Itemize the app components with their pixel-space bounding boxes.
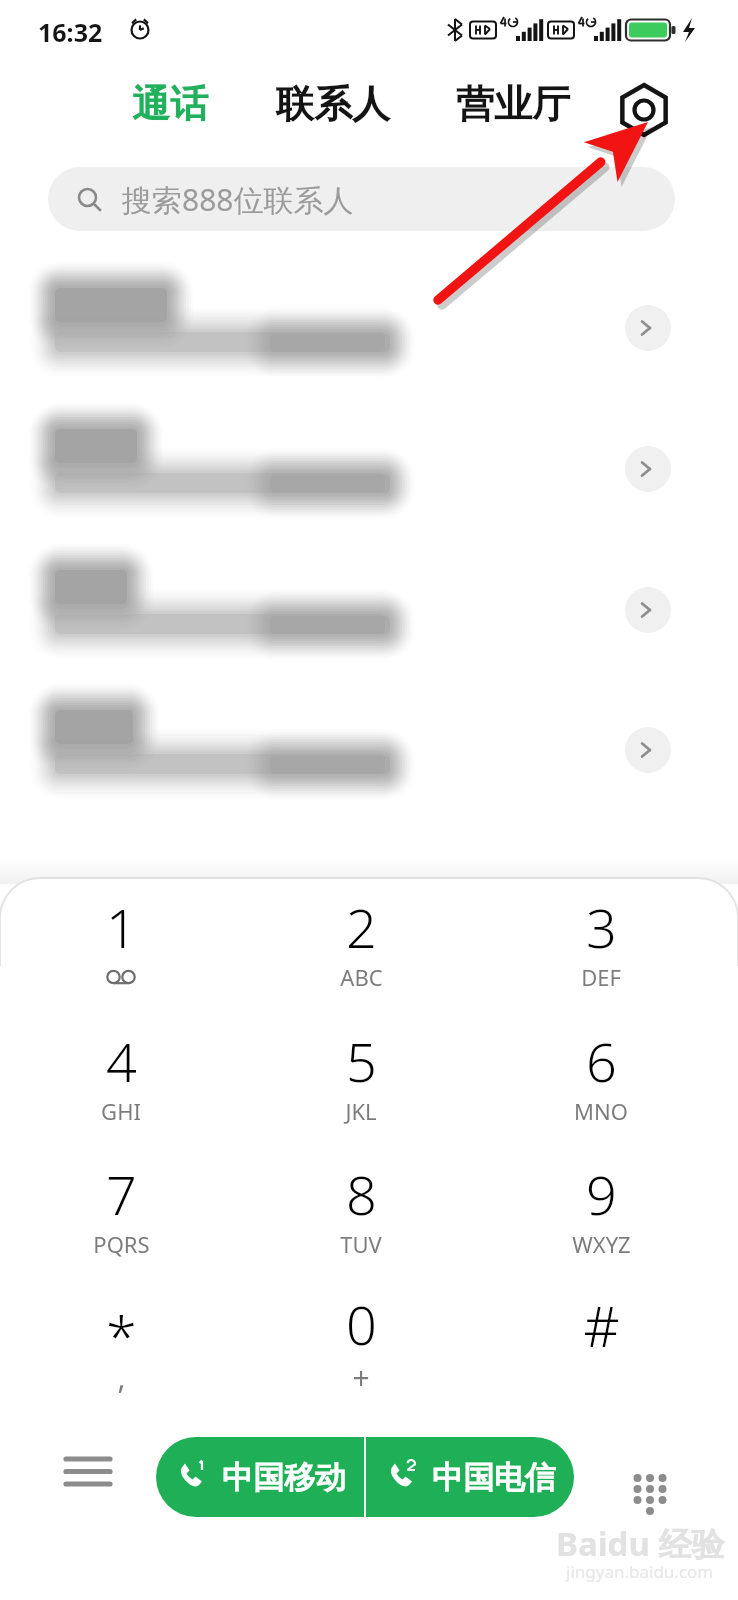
staticText: , bbox=[117, 1357, 126, 1398]
staticText: 3 bbox=[586, 890, 617, 964]
staticText: 7 bbox=[106, 1157, 137, 1231]
button[interactable]: 5 bbox=[261, 1018, 461, 1146]
button[interactable] bbox=[0, 399, 738, 539]
staticText: 联系人 bbox=[276, 80, 390, 128]
staticText: + bbox=[352, 1357, 370, 1398]
button[interactable]: 9 bbox=[501, 1151, 701, 1279]
button[interactable]: 通话 bbox=[128, 78, 212, 130]
button[interactable]: Settings bbox=[616, 82, 672, 138]
button[interactable]: 营业厅 bbox=[452, 78, 574, 130]
button[interactable] bbox=[0, 680, 738, 820]
button[interactable]: * bbox=[21, 1281, 221, 1409]
staticText: 9 bbox=[586, 1157, 617, 1231]
staticText: DEF bbox=[581, 962, 621, 992]
staticText: 6 bbox=[586, 1024, 617, 1098]
staticText: MNO bbox=[574, 1096, 628, 1126]
staticText: 1 bbox=[106, 890, 137, 964]
staticText: 8 bbox=[346, 1157, 377, 1231]
button[interactable]: 4 bbox=[21, 1018, 221, 1146]
staticText: JKL bbox=[345, 1096, 377, 1126]
button[interactable]: Keypad bbox=[612, 1455, 688, 1531]
staticText: 2 bbox=[346, 890, 377, 964]
button[interactable]: 搜索888位联系人 bbox=[48, 167, 675, 231]
button[interactable]: 0 bbox=[261, 1281, 461, 1409]
button[interactable]: 3 bbox=[501, 884, 701, 1012]
staticText: ABC bbox=[340, 962, 383, 992]
button[interactable]: 6 bbox=[501, 1018, 701, 1146]
staticText: # bbox=[583, 1287, 620, 1363]
button[interactable]: 中国电信 bbox=[366, 1437, 574, 1517]
staticText: 中国移动 bbox=[222, 1458, 346, 1497]
button[interactable]: 1 bbox=[21, 884, 221, 1012]
button[interactable] bbox=[0, 540, 738, 680]
staticText: TUV bbox=[340, 1229, 382, 1259]
staticText: 5 bbox=[346, 1024, 377, 1098]
staticText: WXYZ bbox=[572, 1229, 631, 1259]
button[interactable]: Menu bbox=[56, 1440, 120, 1504]
staticText: 16:32 bbox=[38, 15, 103, 49]
button[interactable]: 8 bbox=[261, 1151, 461, 1279]
button[interactable]: 联系人 bbox=[272, 78, 394, 130]
staticText: Baidu 经验 bbox=[556, 1521, 725, 1566]
staticText: PQRS bbox=[93, 1229, 150, 1259]
button[interactable]: 中国移动 bbox=[156, 1437, 364, 1517]
staticText: 中国电信 bbox=[432, 1458, 556, 1497]
button[interactable]: 7 bbox=[21, 1151, 221, 1279]
staticText: 营业厅 bbox=[456, 80, 570, 128]
staticText: 4 bbox=[106, 1024, 137, 1098]
staticText: jingyan.baidu.com bbox=[566, 1560, 714, 1583]
button[interactable]: 2 bbox=[261, 884, 461, 1012]
staticText: 通话 bbox=[132, 80, 208, 128]
staticText: GHI bbox=[101, 1096, 141, 1126]
staticText: * bbox=[106, 1297, 137, 1373]
staticText: 搜索888位联系人 bbox=[122, 179, 354, 220]
button[interactable] bbox=[0, 258, 738, 398]
staticText: 0 bbox=[346, 1287, 377, 1361]
button[interactable]: # bbox=[501, 1281, 701, 1409]
